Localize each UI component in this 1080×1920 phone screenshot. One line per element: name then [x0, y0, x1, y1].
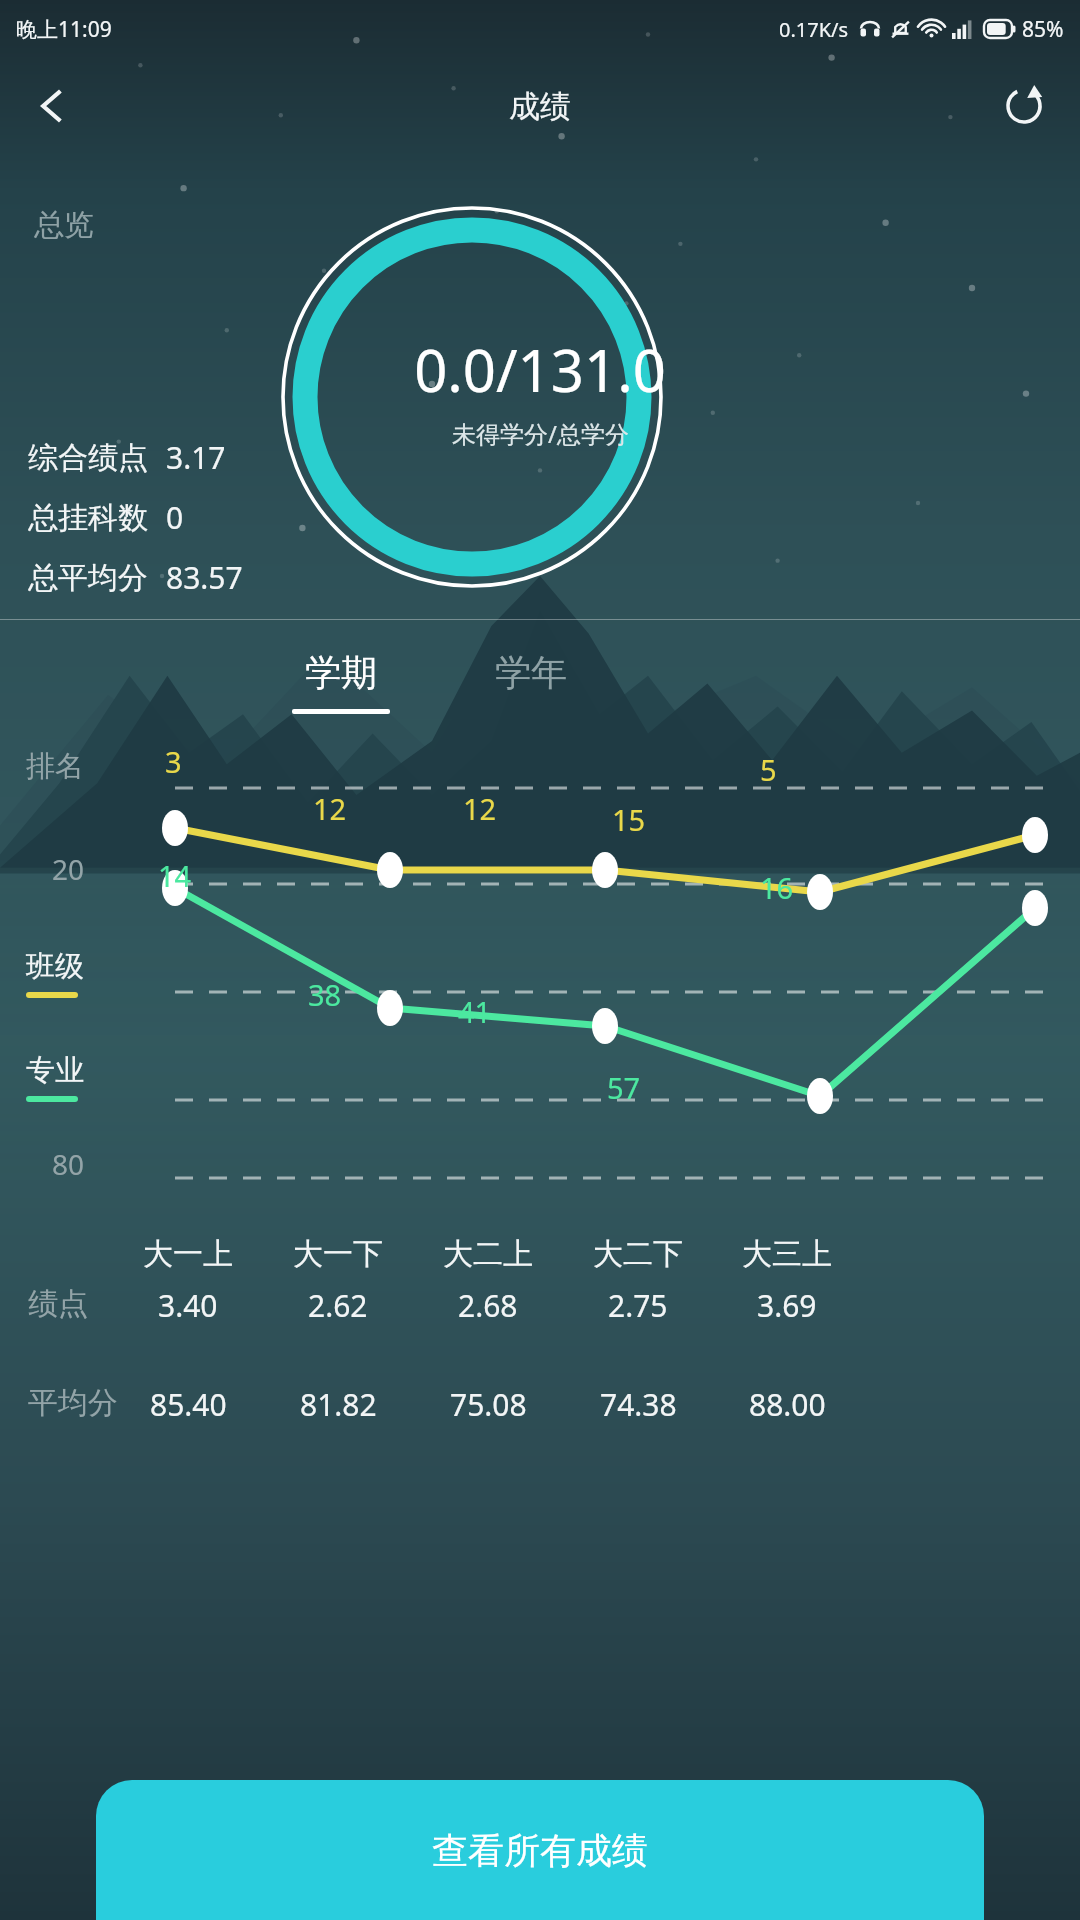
staticText: 81.82 [300, 1384, 377, 1425]
staticText: 3.17 [166, 437, 226, 478]
staticText: 平均分 [28, 1384, 118, 1422]
staticText: 12 [463, 789, 497, 828]
staticText: 0.17K/s [779, 16, 849, 43]
staticText: 0.0/131.0 [414, 330, 666, 409]
staticText: 80 [52, 1145, 85, 1183]
staticText: 3 [165, 742, 182, 781]
staticText: 大二下 [593, 1235, 683, 1273]
staticText: 3.69 [757, 1285, 817, 1326]
staticText: 12 [313, 789, 347, 828]
staticText: 排名 [26, 748, 84, 785]
staticText: 2.75 [608, 1285, 668, 1326]
button[interactable]: 学年 [436, 650, 626, 736]
staticText: 专业 [26, 1052, 84, 1089]
staticText: 总挂科数 [28, 499, 148, 537]
staticText: 3.40 [158, 1285, 218, 1326]
staticText: 83.57 [166, 557, 243, 598]
staticText: 查看所有成绩 [432, 1828, 648, 1873]
staticText: 总平均分 [28, 559, 148, 597]
staticText: 未得学分/总学分 [452, 417, 629, 450]
staticText: 85% [1022, 15, 1064, 44]
staticText: 20 [52, 850, 85, 888]
staticText: 总览 [34, 206, 94, 244]
staticText: 晚上11:09 [16, 15, 112, 44]
staticText: 41 [458, 992, 492, 1031]
staticText: 15 [612, 800, 646, 839]
staticText: 大一下 [293, 1235, 383, 1273]
staticText: 学年 [495, 650, 567, 695]
staticText: 88.00 [749, 1384, 826, 1425]
staticText: 绩点 [28, 1285, 88, 1323]
staticText: 班级 [26, 948, 84, 985]
button[interactable]: 查看所有成绩 [96, 1780, 984, 1920]
staticText: 74.38 [600, 1384, 677, 1425]
staticText: 综合绩点 [28, 439, 148, 477]
staticText: 大三上 [742, 1235, 832, 1273]
staticText: 75.08 [450, 1384, 527, 1425]
button[interactable]: 学期 [246, 650, 436, 736]
staticText: 57 [607, 1068, 641, 1107]
staticText: 学期 [305, 650, 377, 695]
staticText: 0 [166, 497, 184, 538]
staticText: 5 [760, 750, 777, 789]
staticText: 16 [760, 868, 794, 907]
staticText: 成绩 [509, 87, 571, 126]
staticText: 85.40 [150, 1384, 227, 1425]
staticText: 2.62 [308, 1285, 368, 1326]
staticText: 大一上 [143, 1235, 233, 1273]
staticText: 2.68 [458, 1285, 518, 1326]
button[interactable]: Refresh [986, 68, 1062, 144]
staticText: 大二上 [443, 1235, 533, 1273]
staticText: 38 [308, 975, 342, 1014]
button[interactable]: Back [14, 68, 90, 144]
staticText: 14 [158, 856, 192, 895]
